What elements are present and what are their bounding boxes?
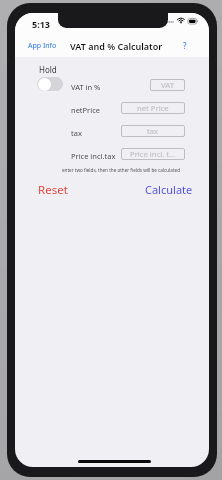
- staticText: VAT: [161, 80, 174, 90]
- staticText: VAT in %: [71, 82, 101, 92]
- staticText: enter two fields, then the other fields …: [62, 167, 180, 173]
- button[interactable]: Reset: [34, 179, 72, 201]
- button[interactable]: net Price: [121, 102, 185, 114]
- staticText: tax: [71, 128, 82, 138]
- button[interactable]: App Info: [24, 37, 61, 55]
- staticText: App Info: [28, 41, 57, 51]
- staticText: Price incl.tax: [71, 151, 116, 161]
- button[interactable]: Price incl. t...: [121, 148, 185, 160]
- staticText: ?: [183, 40, 187, 51]
- button[interactable]: Hold toggle: [37, 77, 63, 91]
- staticText: Hold: [39, 64, 57, 75]
- button[interactable]: tax: [121, 125, 185, 137]
- staticText: tax: [147, 126, 159, 136]
- button[interactable]: VAT: [150, 79, 185, 91]
- button[interactable]: Help: [179, 37, 191, 54]
- staticText: VAT and % Calculator: [70, 40, 163, 52]
- staticText: Price incl. t...: [130, 149, 176, 159]
- button[interactable]: Calculate: [141, 179, 197, 200]
- staticText: net Price: [137, 103, 169, 113]
- staticText: Reset: [38, 182, 68, 198]
- staticText: 5:13: [32, 18, 50, 30]
- staticText: Calculate: [145, 182, 193, 197]
- staticText: netPrice: [71, 105, 100, 115]
